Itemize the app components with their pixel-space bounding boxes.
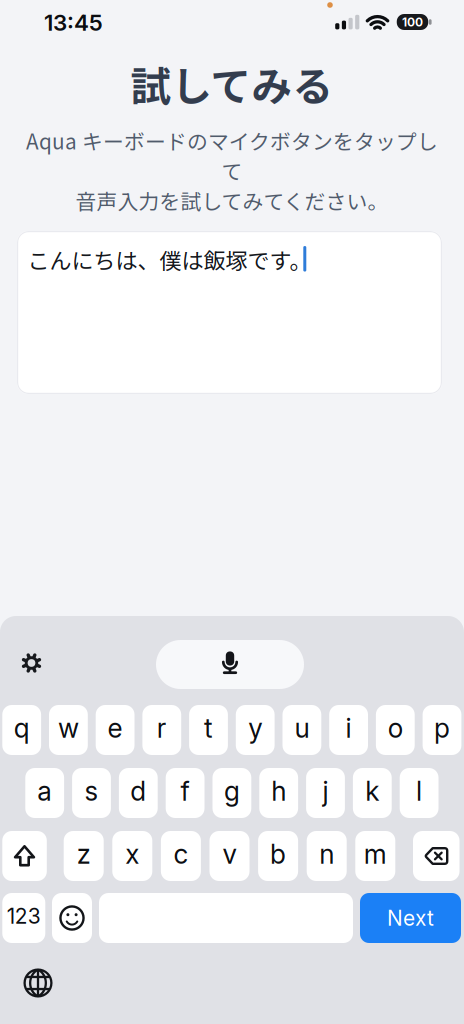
staticText: 123 bbox=[7, 903, 41, 929]
staticText: o bbox=[388, 712, 403, 744]
staticText: k bbox=[365, 775, 379, 807]
staticText: 試してみる bbox=[130, 54, 333, 113]
staticText: h bbox=[271, 775, 286, 807]
staticText: e bbox=[108, 712, 123, 744]
staticText: u bbox=[294, 712, 309, 744]
staticText: m bbox=[364, 838, 387, 870]
staticText: Next bbox=[387, 905, 434, 931]
staticText: 100 bbox=[402, 15, 423, 29]
staticText: i bbox=[346, 712, 352, 744]
staticText: v bbox=[222, 838, 236, 870]
staticText: s bbox=[84, 775, 98, 807]
staticText: 13:45 bbox=[44, 9, 103, 36]
staticText: l bbox=[416, 775, 422, 807]
staticText: z bbox=[77, 838, 91, 870]
staticText: y bbox=[248, 712, 262, 744]
staticText: Aqua キーボードのマイクボタンをタップし bbox=[26, 125, 438, 155]
staticText: j bbox=[322, 775, 328, 807]
staticText: t bbox=[204, 712, 213, 744]
staticText: f bbox=[181, 775, 190, 807]
staticText: x bbox=[125, 838, 139, 870]
staticText: n bbox=[319, 838, 334, 870]
staticText: て bbox=[221, 155, 242, 185]
staticText: こんにちは、僕は飯塚です。 bbox=[27, 244, 311, 275]
staticText: w bbox=[58, 712, 79, 744]
staticText: c bbox=[173, 838, 188, 870]
staticText: a bbox=[37, 775, 52, 807]
staticText: q bbox=[14, 712, 30, 744]
staticText: g bbox=[224, 775, 240, 807]
staticText: p bbox=[434, 712, 450, 744]
staticText: b bbox=[270, 838, 286, 870]
staticText: r bbox=[157, 712, 167, 744]
staticText: d bbox=[130, 775, 146, 807]
staticText: 音声入力を試してみてください。 bbox=[75, 185, 388, 215]
